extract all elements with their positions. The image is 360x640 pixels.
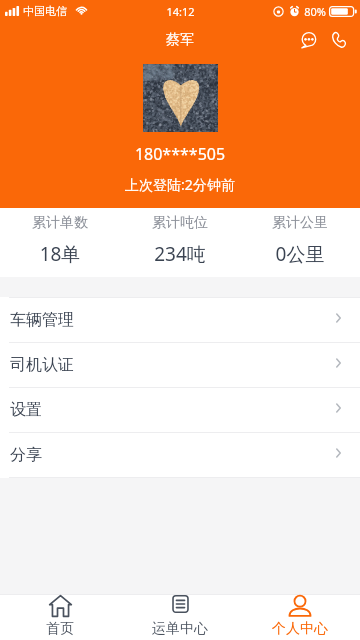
staticText: 累计公里: [240, 214, 360, 232]
button[interactable]: 累计公里: [240, 208, 360, 277]
button[interactable]: Messages: [300, 30, 317, 49]
staticText: 18单: [0, 241, 120, 267]
button[interactable]: 分享: [0, 433, 360, 477]
staticText: 运单中心: [152, 620, 208, 638]
staticText: 中国电信: [23, 4, 67, 18]
button[interactable]: 运单中心: [120, 594, 240, 640]
staticText: 设置: [10, 400, 42, 420]
button[interactable]: Avatar: [143, 64, 218, 132]
staticText: 司机认证: [10, 355, 74, 375]
staticText: 分享: [10, 445, 42, 465]
staticText: 首页: [46, 620, 74, 638]
button[interactable]: 司机认证: [0, 343, 360, 387]
button[interactable]: 累计单数: [0, 208, 120, 277]
staticText: 上次登陆:2分钟前: [0, 175, 360, 194]
staticText: 累计吨位: [120, 214, 240, 232]
staticText: 个人中心: [272, 620, 328, 638]
staticText: 14:12: [166, 4, 195, 19]
staticText: 车辆管理: [10, 310, 74, 330]
button[interactable]: 个人中心: [240, 594, 360, 640]
staticText: 0公里: [240, 241, 360, 267]
button[interactable]: 累计吨位: [120, 208, 240, 277]
button[interactable]: 首页: [0, 594, 120, 640]
staticText: 234吨: [120, 241, 240, 267]
staticText: 累计单数: [0, 214, 120, 232]
button[interactable]: 车辆管理: [0, 298, 360, 342]
button[interactable]: 设置: [0, 388, 360, 432]
staticText: 180****505: [0, 143, 360, 165]
staticText: 蔡军: [0, 31, 360, 49]
staticText: 80%: [304, 4, 326, 19]
button[interactable]: Call: [331, 30, 347, 49]
